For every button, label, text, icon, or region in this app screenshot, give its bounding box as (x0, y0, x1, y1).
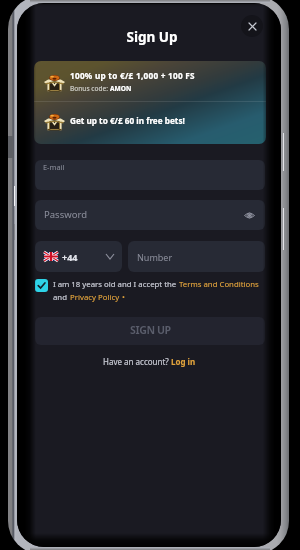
staticText: Number (137, 251, 173, 263)
button[interactable]: Log in (171, 356, 196, 367)
staticText: and (53, 292, 70, 303)
staticText: 100% up to €/£ 1,000 + 100 FS (70, 70, 195, 81)
staticText: Password (44, 208, 87, 221)
button[interactable]: Password (35, 200, 265, 230)
button[interactable]: Terms and Conditions (179, 279, 259, 290)
staticText: Have an account? (103, 356, 171, 367)
button[interactable]: 100% up to €/£ 1,000 + 100 FS (34, 61, 266, 144)
button[interactable]: I am 18 years old and I accept the terms (35, 279, 48, 292)
staticText: I am 18 years old and I accept the (53, 279, 179, 290)
staticText: E-mail (43, 162, 65, 172)
button[interactable]: Privacy Policy (70, 292, 120, 303)
button[interactable]: Number (128, 241, 265, 272)
staticText: AMON (110, 84, 132, 93)
staticText: SIGN UP (130, 323, 171, 337)
staticText: +44 (62, 251, 78, 263)
button[interactable]: Close (241, 15, 263, 37)
staticText: Bonus code: (70, 84, 110, 93)
staticText: Sign Up (20, 28, 281, 46)
button[interactable]: SIGN UP (35, 317, 265, 345)
staticText: • (120, 292, 125, 303)
button[interactable]: Country code (35, 241, 122, 272)
button[interactable]: E-mail (35, 160, 265, 190)
staticText: Get up to €/£ 60 in free bets! (70, 115, 185, 126)
button[interactable]: Show password (240, 206, 258, 224)
